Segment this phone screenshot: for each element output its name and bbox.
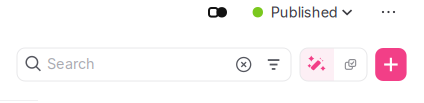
button[interactable]: Duplicate — [334, 48, 367, 81]
button[interactable]: Clear search — [17, 48, 43, 81]
staticText: Search — [47, 55, 95, 72]
button[interactable]: Filter — [17, 48, 41, 81]
button[interactable]: AI assist — [300, 48, 334, 81]
staticText: Published — [271, 3, 338, 21]
